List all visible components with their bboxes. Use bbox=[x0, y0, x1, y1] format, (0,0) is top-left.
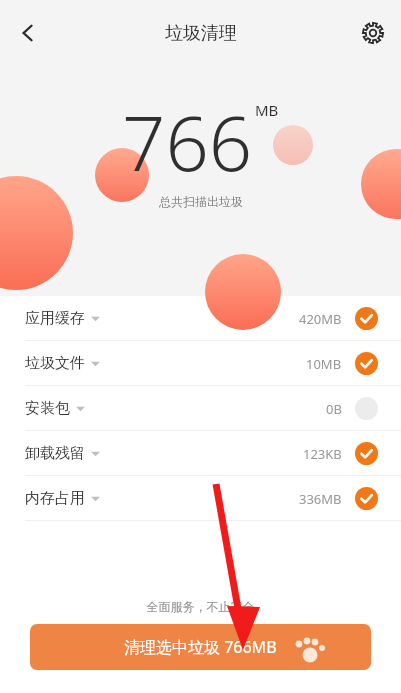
button[interactable]: Settings bbox=[345, 0, 401, 66]
staticText: 应用缓存 bbox=[25, 309, 85, 328]
staticText: 总共扫描出垃圾 bbox=[159, 194, 243, 209]
button[interactable]: Selected, 应用缓存 bbox=[355, 307, 378, 330]
staticText: 内存占用 bbox=[25, 489, 85, 508]
staticText: 全面服务，不止安全 bbox=[0, 599, 401, 614]
staticText: 123KB bbox=[303, 445, 342, 463]
button[interactable]: 应用缓存 bbox=[0, 296, 401, 341]
staticText: 卸载残留 bbox=[25, 444, 85, 463]
button[interactable]: 内存占用 bbox=[0, 476, 401, 521]
staticText: 336MB bbox=[299, 490, 342, 508]
button[interactable]: Selected, 垃圾文件 bbox=[355, 352, 378, 375]
staticText: MB bbox=[255, 100, 279, 120]
button[interactable]: Not selected, 安装包 bbox=[355, 397, 378, 420]
staticText: 清理选中垃圾 766MB bbox=[124, 636, 277, 658]
button[interactable]: 清理选中垃圾 766MB bbox=[30, 624, 371, 670]
staticText: 10MB bbox=[306, 355, 342, 373]
button[interactable]: Selected, 内存占用 bbox=[355, 487, 378, 510]
staticText: 安装包 bbox=[25, 399, 70, 418]
staticText: 766 bbox=[122, 90, 253, 194]
button[interactable]: Back bbox=[0, 0, 56, 66]
staticText: 0B bbox=[326, 400, 342, 418]
button[interactable]: 垃圾文件 bbox=[0, 341, 401, 386]
staticText: 420MB bbox=[299, 310, 342, 328]
button[interactable]: Selected, 卸载残留 bbox=[355, 442, 378, 465]
staticText: 垃圾文件 bbox=[25, 354, 85, 373]
staticText: 垃圾清理 bbox=[165, 22, 237, 45]
button[interactable]: 安装包 bbox=[0, 386, 401, 431]
button[interactable]: 卸载残留 bbox=[0, 431, 401, 476]
